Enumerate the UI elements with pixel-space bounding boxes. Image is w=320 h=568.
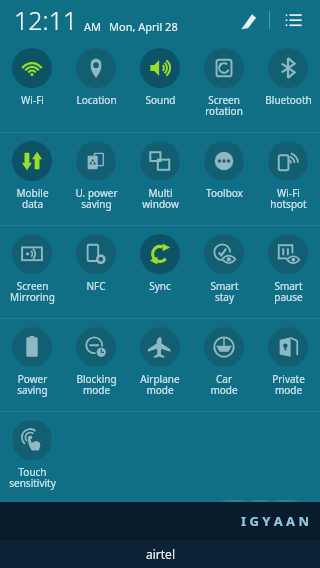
button[interactable]: Smart stay (192, 226, 256, 318)
button[interactable]: Touch sensitivity (0, 412, 64, 498)
staticText: Wi-Fi (21, 93, 44, 107)
staticText: Location (76, 93, 117, 107)
staticText: Blocking mode (76, 372, 117, 397)
button[interactable]: Screen Mirroring (0, 226, 64, 318)
staticText: Bluetooth (265, 93, 312, 107)
staticText: Sync (149, 279, 171, 293)
staticText: Car mode (210, 372, 238, 397)
button[interactable]: Sound (128, 40, 192, 132)
button[interactable]: Bluetooth (256, 40, 320, 132)
staticText: I G Y A A N (241, 512, 310, 530)
staticText: U. power saving (75, 186, 118, 211)
staticText: Mon, April 28 (109, 19, 178, 34)
staticText: 12:11 (14, 3, 78, 37)
staticText: Smart pause (274, 279, 303, 304)
button[interactable]: Smart pause (256, 226, 320, 318)
staticText: Touch sensitivity (9, 465, 56, 490)
button[interactable]: Sync (128, 226, 192, 318)
staticText: Toolbox (206, 186, 243, 200)
button[interactable]: Airplane mode (128, 319, 192, 411)
staticText: Screen rotation (205, 93, 243, 118)
button[interactable]: Location (64, 40, 128, 132)
button[interactable]: Mobile data (0, 133, 64, 225)
button[interactable]: Wi-Fi (0, 40, 64, 132)
button[interactable]: Toolbox (192, 133, 256, 225)
staticText: Private mode (272, 372, 305, 397)
staticText: Power saving (17, 372, 48, 397)
staticText: Smart stay (210, 279, 239, 304)
button[interactable]: Car mode (192, 319, 256, 411)
button[interactable]: Edit (233, 5, 263, 35)
staticText: Wi-Fi hotspot (270, 186, 307, 211)
button[interactable]: Blocking mode (64, 319, 128, 411)
button[interactable]: Multi window (128, 133, 192, 225)
button[interactable]: Power saving (0, 319, 64, 411)
button[interactable]: Screen rotation (192, 40, 256, 132)
button[interactable]: U. power saving (64, 133, 128, 225)
staticText: NFC (86, 279, 106, 293)
staticText: Screen Mirroring (10, 279, 55, 304)
staticText: AM (84, 19, 102, 34)
button[interactable]: List (278, 5, 308, 35)
staticText: Mobile data (16, 186, 49, 211)
staticText: Airplane mode (140, 372, 180, 397)
button[interactable]: NFC (64, 226, 128, 318)
staticText: airtel (146, 546, 175, 562)
button[interactable]: Wi-Fi hotspot (256, 133, 320, 225)
button[interactable]: Private mode (256, 319, 320, 411)
staticText: Multi window (142, 186, 179, 211)
staticText: Sound (145, 93, 176, 107)
